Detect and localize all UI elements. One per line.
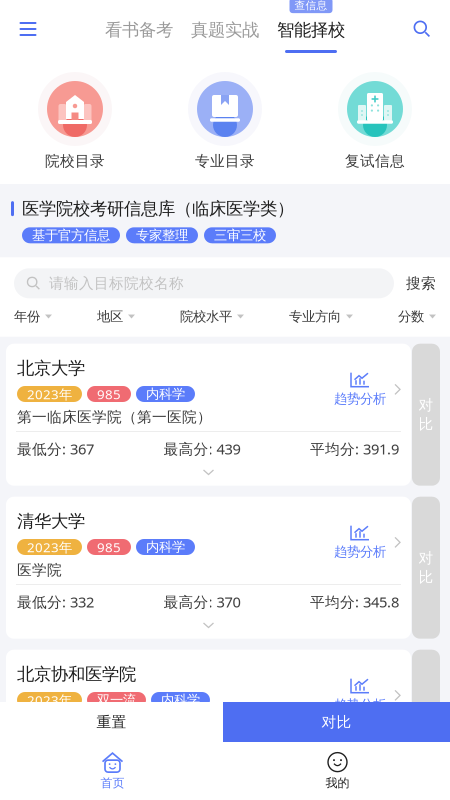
- staticText: 对比: [321, 713, 351, 731]
- staticText: 复试信息: [345, 152, 405, 170]
- staticText: 专业目录: [195, 152, 255, 170]
- staticText: 双一流: [97, 692, 136, 708]
- button[interactable]: 对: [412, 497, 440, 639]
- staticText: 趋势分析: [334, 391, 386, 407]
- staticText: 2023年: [27, 538, 72, 556]
- button[interactable]: 真题实战: [191, 15, 259, 45]
- staticText: 地区: [97, 308, 123, 325]
- staticText: 趋势分析: [334, 544, 386, 560]
- button[interactable]: 趋势分析: [334, 664, 401, 713]
- staticText: 985: [97, 385, 121, 403]
- staticText: 请输入目标院校名称: [49, 274, 184, 292]
- staticText: 看书备考: [105, 19, 173, 41]
- button[interactable]: 专业方向: [289, 301, 353, 332]
- staticText: 平均分: 372.4: [310, 745, 399, 764]
- staticText: 平均分: 345.8: [310, 592, 399, 611]
- button[interactable]: 分数: [398, 301, 436, 332]
- staticText: 医学院: [17, 561, 62, 579]
- staticText: 内科学: [146, 539, 185, 555]
- button[interactable]: 对: [412, 650, 440, 792]
- staticText: 平均分: 391.9: [310, 439, 399, 458]
- staticText: 985: [97, 538, 121, 556]
- staticText: 对: [418, 549, 433, 567]
- button[interactable]: 专业目录: [150, 72, 300, 170]
- button[interactable]: 对: [412, 344, 440, 486]
- button[interactable]: 看书备考: [105, 15, 173, 45]
- button[interactable]: 院校水平: [180, 301, 244, 332]
- staticText: 北京协和医学院: [17, 664, 136, 685]
- staticText: 内科学: [161, 692, 200, 708]
- button[interactable]: 复试信息: [300, 72, 450, 170]
- button[interactable]: 首页: [0, 752, 225, 790]
- staticText: 专业方向: [289, 308, 341, 325]
- staticText: 我的: [325, 776, 349, 790]
- button[interactable]: 重置: [0, 702, 223, 742]
- staticText: 搜索: [406, 274, 436, 292]
- staticText: 首页: [100, 776, 124, 790]
- button[interactable]: 趋势分析: [334, 358, 401, 407]
- staticText: 院校目录: [45, 152, 105, 170]
- staticText: 比: [418, 568, 433, 586]
- staticText: 最高分: 370: [163, 592, 240, 611]
- staticText: 基于官方信息: [32, 227, 110, 243]
- button[interactable]: Menu: [6, 6, 50, 52]
- staticText: 智能择校: [277, 19, 345, 41]
- staticText: 2023年: [27, 385, 72, 403]
- staticText: 院校水平: [180, 308, 232, 325]
- button[interactable]: 趋势分析: [334, 511, 401, 560]
- button[interactable]: 对比: [223, 702, 450, 742]
- staticText: 最低分: 332: [17, 592, 94, 611]
- staticText: 内科学: [146, 386, 185, 402]
- staticText: 最低分: 367: [17, 439, 94, 458]
- button[interactable]: 院校目录: [0, 72, 150, 170]
- button[interactable]: 年份: [14, 301, 52, 332]
- staticText: 最高分: 439: [163, 439, 240, 458]
- staticText: 查信息: [294, 0, 327, 12]
- staticText: 第一临床医学院（第一医院）: [17, 408, 212, 426]
- button[interactable]: 搜索: [406, 268, 436, 298]
- staticText: 清华大学: [17, 511, 85, 532]
- staticText: 趋势分析: [334, 697, 386, 713]
- staticText: 北京大学: [17, 358, 85, 379]
- button[interactable]: 地区: [97, 301, 135, 332]
- staticText: 对: [418, 396, 433, 414]
- staticText: 2023年: [27, 691, 72, 709]
- staticText: 专家整理: [136, 227, 188, 243]
- staticText: 医学院校考研信息库（临床医学类）: [22, 198, 294, 219]
- staticText: 比: [418, 415, 433, 433]
- staticText: 真题实战: [191, 19, 259, 41]
- staticText: 分数: [398, 308, 424, 325]
- staticText: 重置: [96, 713, 126, 731]
- staticText: 三审三校: [214, 227, 266, 243]
- button[interactable]: Search: [400, 6, 444, 52]
- button[interactable]: 我的: [225, 752, 450, 790]
- button[interactable]: 智能择校: [277, 15, 345, 45]
- staticText: 年份: [14, 308, 40, 325]
